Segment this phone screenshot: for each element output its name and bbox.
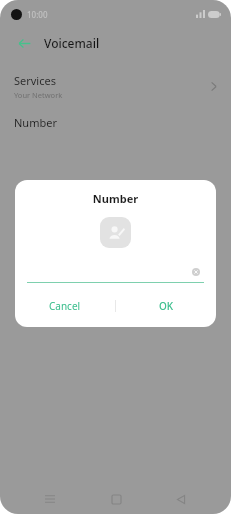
button[interactable]: Services — [0, 66, 231, 106]
button[interactable]: Pick contact — [100, 217, 131, 248]
staticText: Cancel — [49, 299, 81, 313]
staticText: Number — [15, 191, 216, 206]
staticText: OK — [159, 299, 174, 313]
button[interactable]: Back — [14, 33, 34, 53]
staticText: Services — [14, 73, 56, 88]
button[interactable]: Home — [101, 484, 131, 514]
button[interactable]: Cancel — [15, 293, 115, 319]
staticText: Voicemail — [44, 35, 100, 51]
staticText: 10:00 — [27, 9, 48, 20]
staticText: Your Network — [14, 90, 63, 100]
button[interactable]: Clear — [188, 264, 204, 280]
button[interactable]: Number — [0, 106, 231, 138]
button[interactable]: OK — [116, 293, 216, 319]
button[interactable]: Back — [166, 484, 196, 514]
staticText: Number — [14, 115, 57, 130]
